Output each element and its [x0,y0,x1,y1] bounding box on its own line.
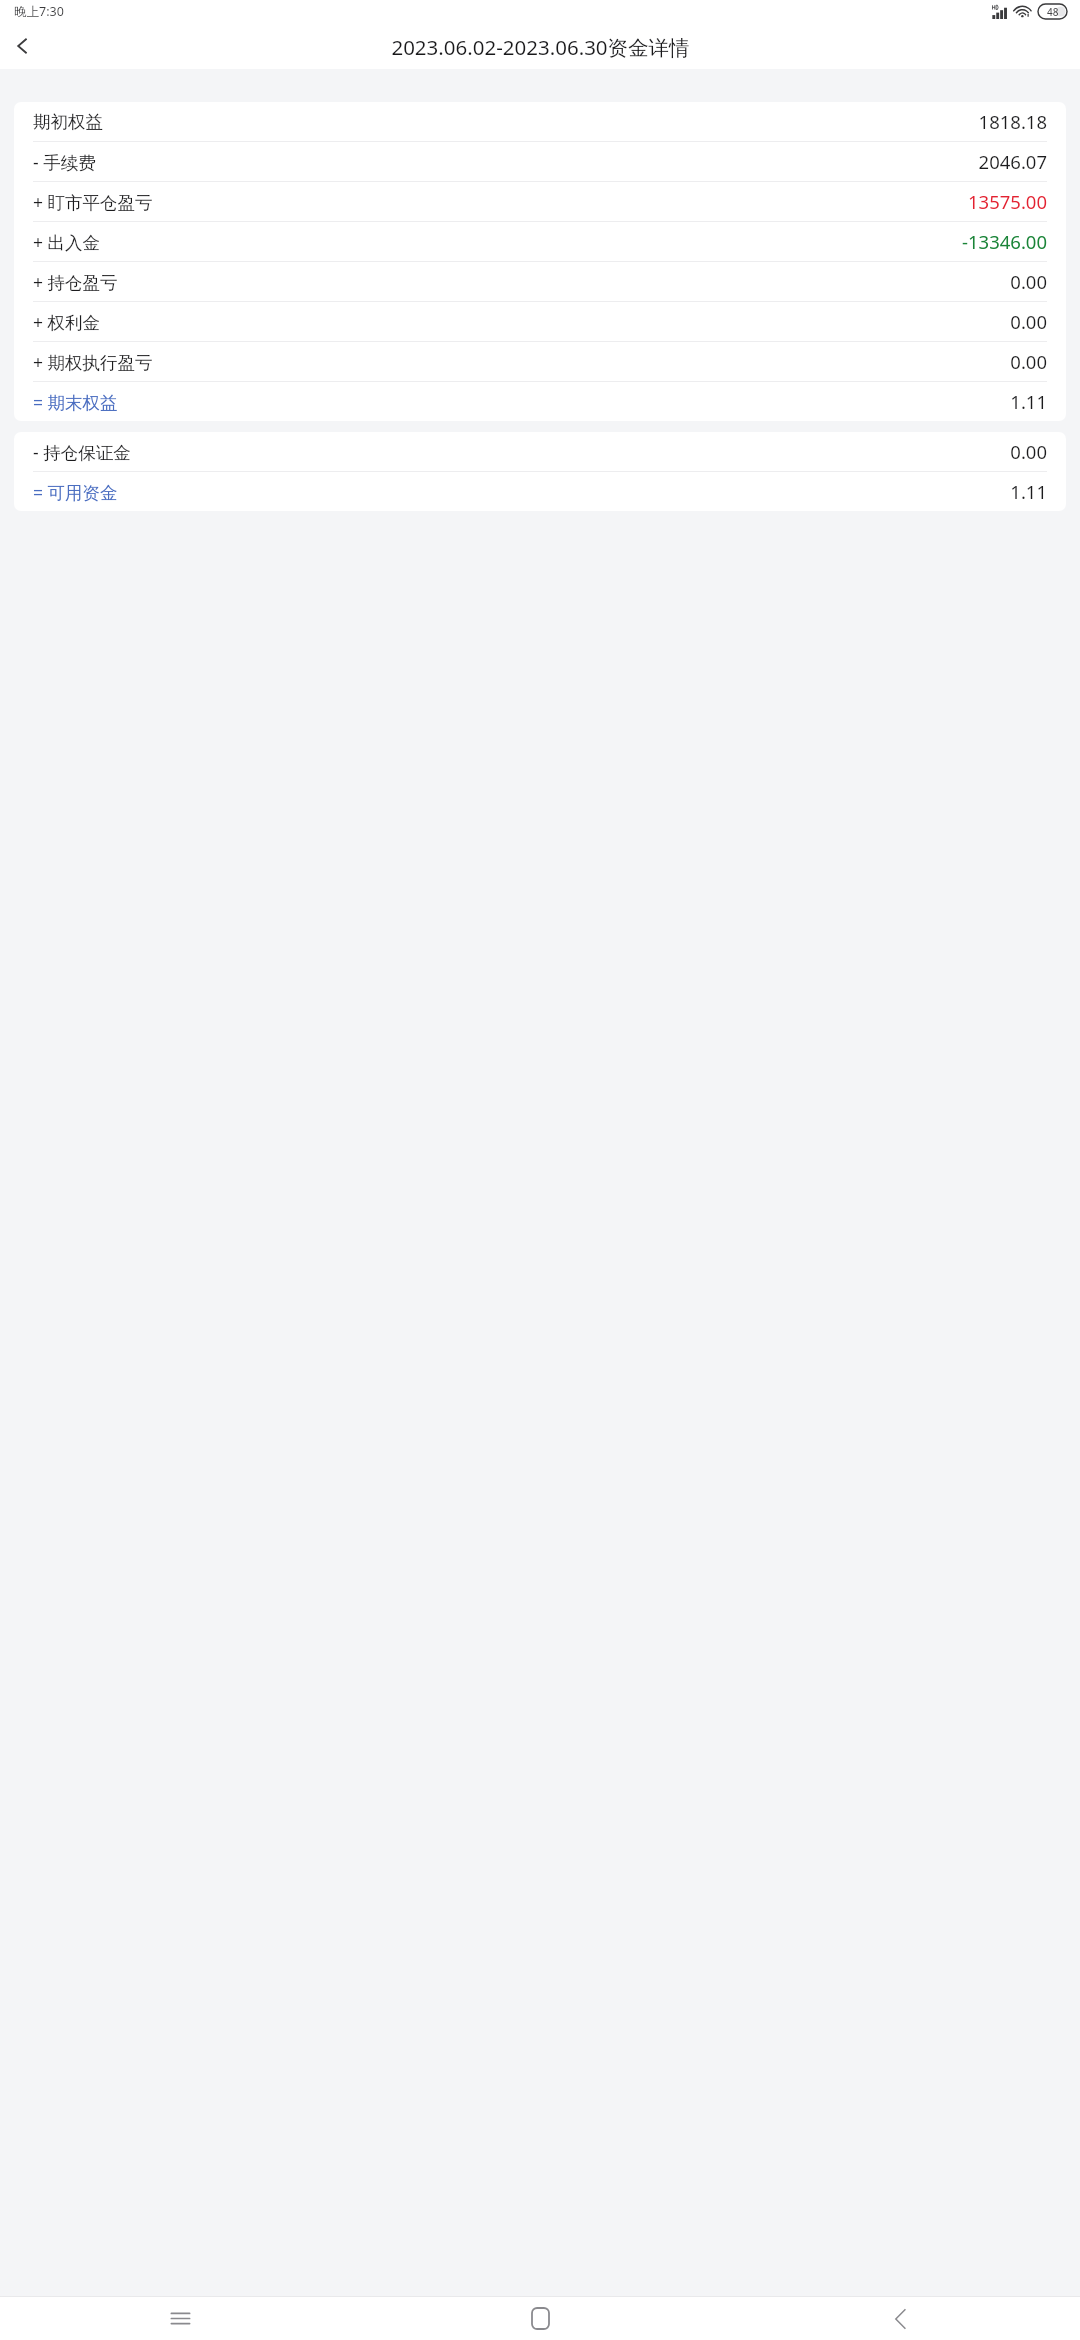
staticText: 48 [1047,5,1059,19]
staticText: + 出入金 [33,230,101,254]
staticText: + 持仓盈亏 [33,270,118,294]
staticText: 0.00 [1010,439,1047,464]
staticText: + 盯市平仓盈亏 [33,190,153,214]
staticText: 0.00 [1010,309,1047,334]
button[interactable]: 期初权益 [14,102,1066,141]
staticText: 0.00 [1010,269,1047,294]
button[interactable]: + 出入金 [14,222,1066,261]
staticText: 13575.00 [967,189,1047,214]
button[interactable]: + 期权执行盈亏 [14,342,1066,381]
staticText: - 持仓保证金 [33,440,131,464]
button[interactable]: Back [720,2297,1080,2340]
button[interactable]: = 期末权益 [14,382,1066,421]
staticText: + 权利金 [33,310,101,334]
button[interactable]: - 手续费 [14,142,1066,181]
staticText: = 可用资金 [33,480,118,504]
button[interactable]: + 权利金 [14,302,1066,341]
staticText: 1.11 [1010,479,1047,504]
button[interactable]: - 持仓保证金 [14,432,1066,471]
staticText: 2023.06.02-2023.06.30资金详情 [391,33,690,61]
staticText: 期初权益 [33,111,103,133]
button[interactable]: Home [360,2297,720,2340]
button[interactable]: + 持仓盈亏 [14,262,1066,301]
staticText: 晚上7:30 [14,3,64,20]
button[interactable]: Back [0,23,46,69]
staticText: 1818.18 [978,109,1047,134]
button[interactable]: Recent apps [0,2297,360,2340]
staticText: 0.00 [1010,349,1047,374]
staticText: 2046.07 [978,149,1047,174]
staticText: -13346.00 [962,229,1047,254]
staticText: + 期权执行盈亏 [33,350,153,374]
staticText: - 手续费 [33,150,96,174]
staticText: 1.11 [1010,389,1047,414]
staticText: = 期末权益 [33,390,118,414]
button[interactable]: = 可用资金 [14,472,1066,511]
button[interactable]: + 盯市平仓盈亏 [14,182,1066,221]
